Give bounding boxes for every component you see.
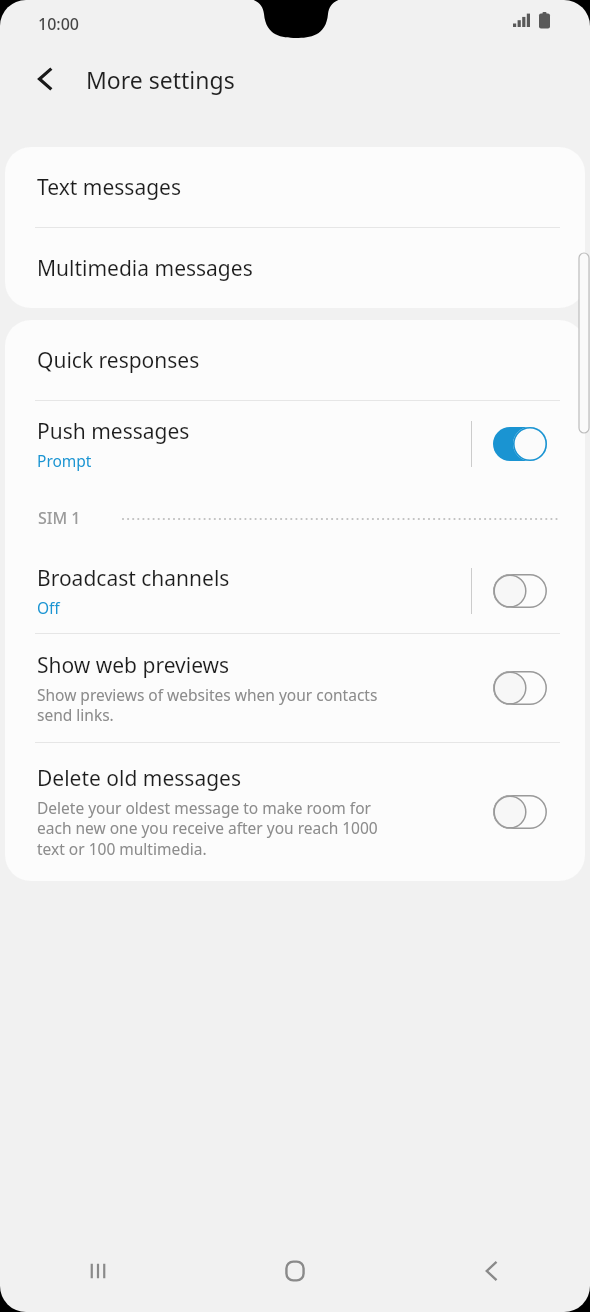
button[interactable]: Back	[20, 53, 72, 105]
button[interactable]: Text messages	[5, 147, 585, 227]
button[interactable]: Push messages	[5, 401, 585, 487]
staticText: Show previews of websites when your cont…	[37, 684, 378, 726]
staticText: Push messages	[37, 417, 190, 446]
button[interactable]: Broadcast channels	[5, 549, 585, 633]
staticText: Delete old messages	[37, 764, 242, 793]
button[interactable]: Delete old messages	[5, 743, 585, 881]
button[interactable]: Multimedia messages	[5, 228, 585, 308]
staticText: Off	[37, 597, 60, 618]
button[interactable]: Back	[393, 1230, 590, 1312]
staticText: SIM 1	[38, 507, 81, 529]
staticText: Quick responses	[37, 346, 200, 375]
button[interactable]: Recents	[0, 1230, 196, 1312]
staticText: Show web previews	[37, 651, 230, 680]
staticText: Multimedia messages	[37, 254, 253, 283]
staticText: 10:00	[38, 13, 79, 35]
button[interactable]: Delete old messages toggle	[493, 795, 547, 829]
button[interactable]: Show web previews	[5, 634, 585, 742]
button[interactable]: Show web previews toggle	[493, 671, 547, 705]
staticText: Broadcast channels	[37, 564, 230, 593]
button[interactable]: Push messages toggle	[493, 427, 547, 461]
staticText: Prompt	[37, 450, 92, 471]
button[interactable]: Home	[196, 1230, 393, 1312]
staticText: Text messages	[37, 173, 181, 202]
button[interactable]: Broadcast channels toggle	[493, 574, 547, 608]
button[interactable]: Quick responses	[5, 320, 585, 400]
staticText: Delete your oldest message to make room …	[37, 797, 378, 860]
staticText: More settings	[86, 64, 235, 95]
